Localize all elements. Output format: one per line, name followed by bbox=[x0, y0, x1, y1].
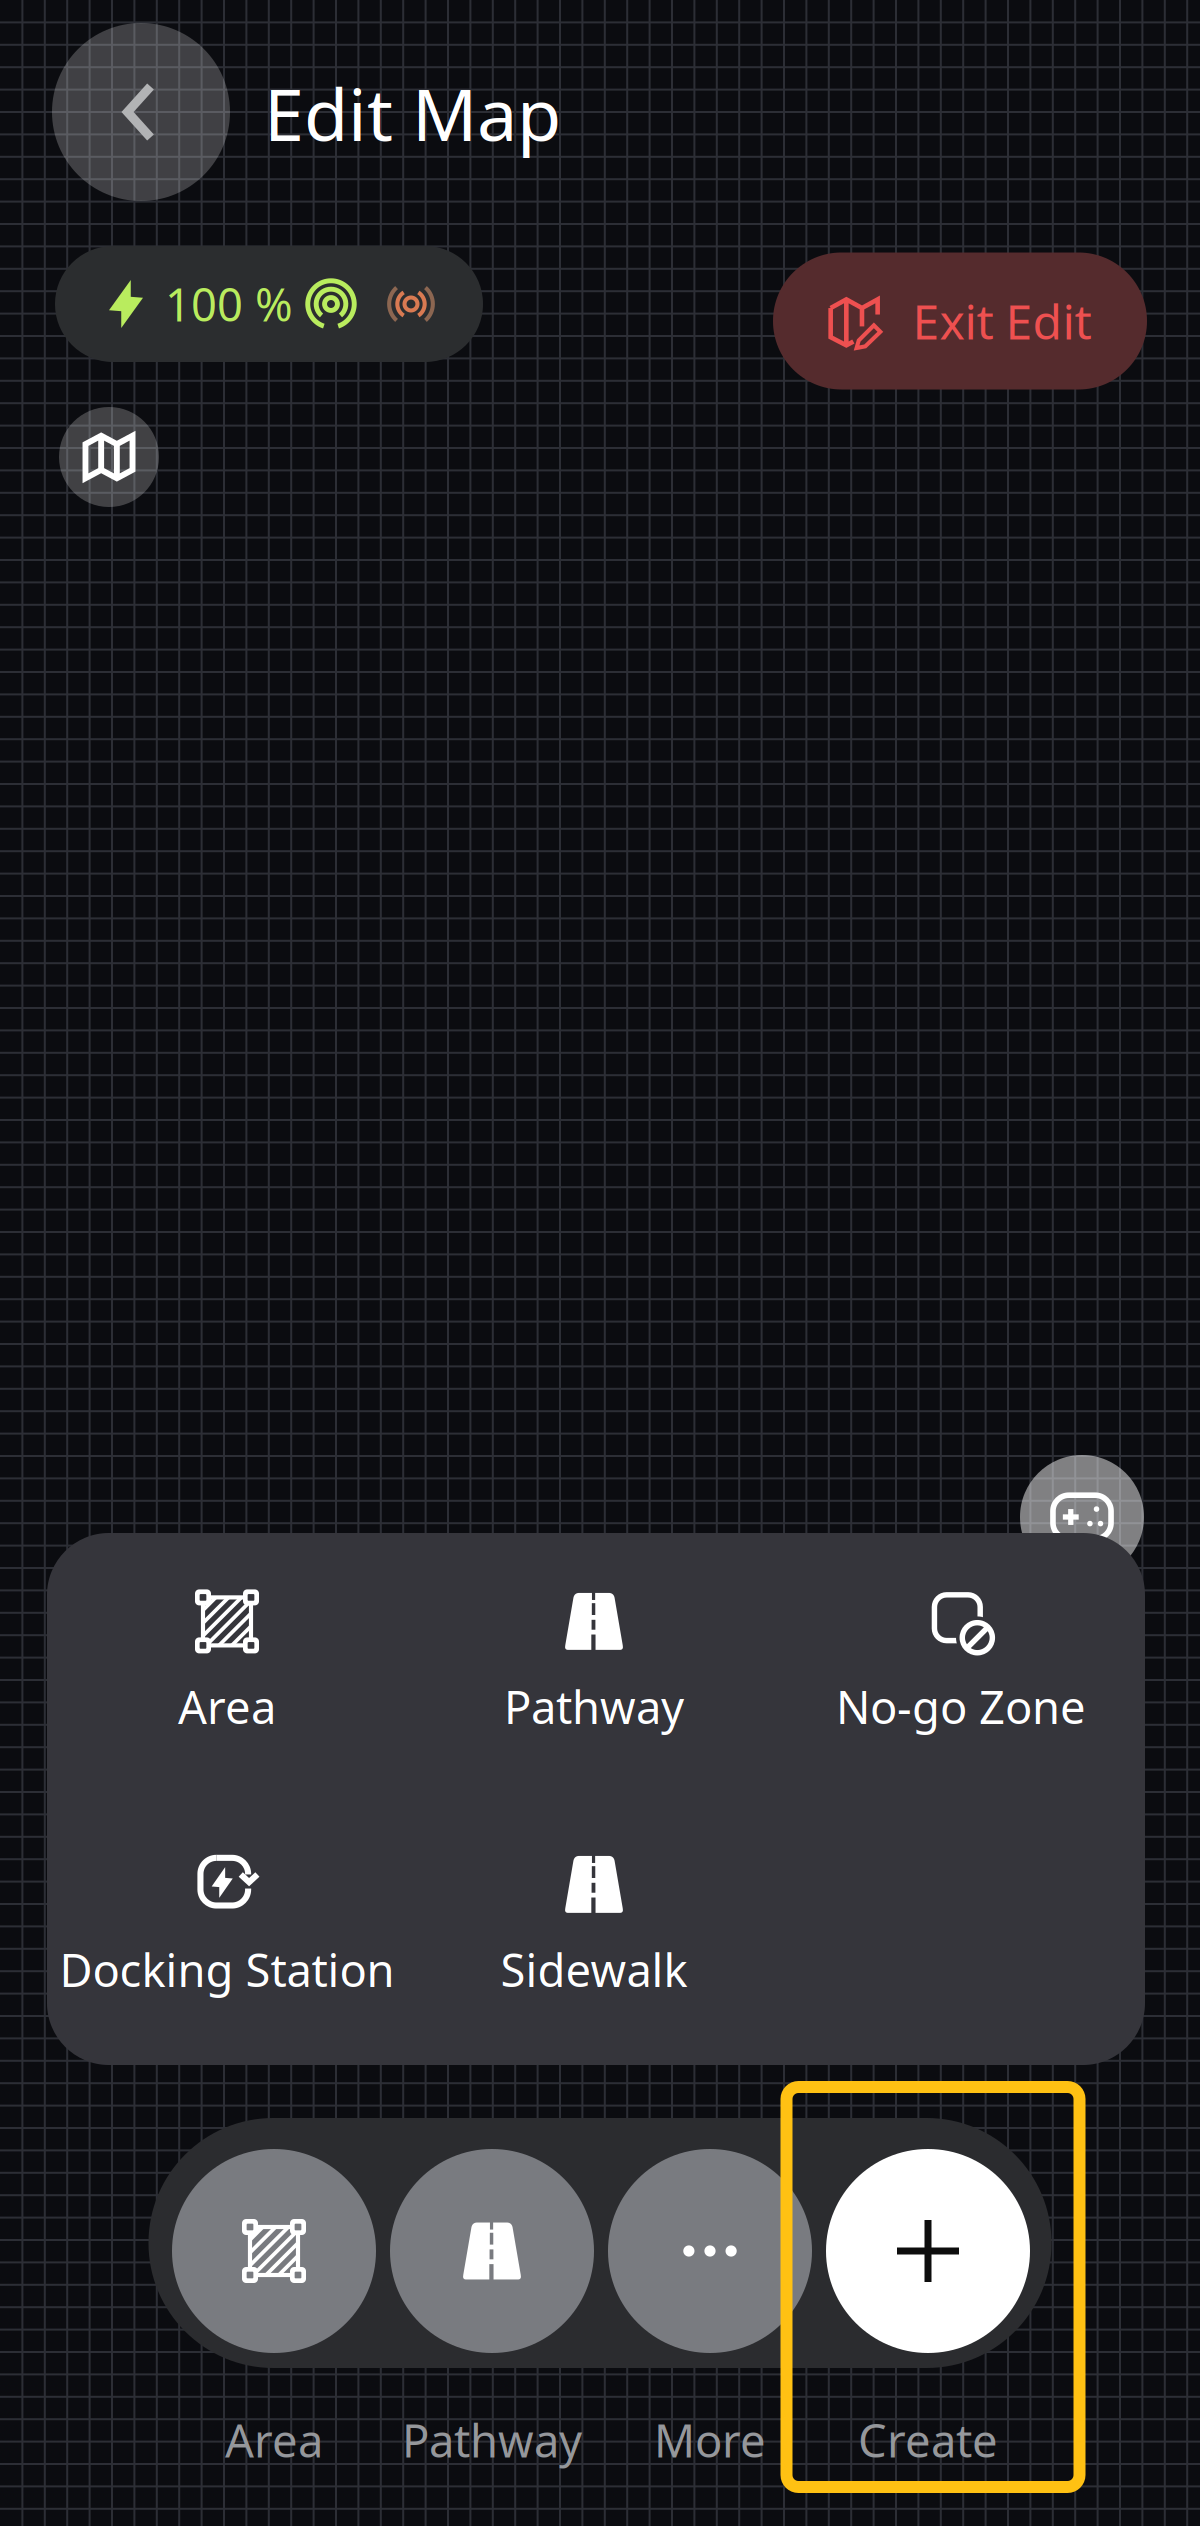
button[interactable]: Create bbox=[819, 2126, 1037, 2504]
button[interactable]: Manual control bbox=[1020, 1455, 1144, 1579]
button[interactable]: Area bbox=[44, 1591, 410, 1735]
button[interactable]: Map layers bbox=[59, 407, 159, 507]
staticText: Exit Edit bbox=[912, 289, 1091, 353]
button[interactable]: Pathway bbox=[383, 2126, 601, 2504]
button[interactable]: Back bbox=[52, 23, 230, 201]
button[interactable]: Area bbox=[165, 2126, 383, 2504]
staticText: Pathway bbox=[504, 1676, 684, 1737]
staticText: Create bbox=[858, 2410, 998, 2470]
staticText: Docking Station bbox=[59, 1939, 394, 2000]
staticText: Area bbox=[225, 2410, 323, 2470]
staticText: More bbox=[654, 2410, 766, 2470]
button[interactable]: Pathway bbox=[411, 1591, 777, 1735]
button[interactable]: Exit Edit bbox=[773, 252, 1147, 389]
staticText: No-go Zone bbox=[836, 1676, 1086, 1737]
button[interactable]: No-go Zone bbox=[778, 1591, 1144, 1735]
staticText: Sidewalk bbox=[500, 1939, 687, 2000]
staticText: Edit Map bbox=[264, 65, 561, 161]
staticText: Pathway bbox=[402, 2410, 582, 2470]
button[interactable]: Docking Station bbox=[44, 1854, 410, 1998]
button[interactable]: More bbox=[601, 2126, 819, 2504]
staticText: Area bbox=[178, 1676, 276, 1737]
button[interactable]: Sidewalk bbox=[411, 1854, 777, 1998]
staticText: 100 % bbox=[165, 274, 293, 334]
